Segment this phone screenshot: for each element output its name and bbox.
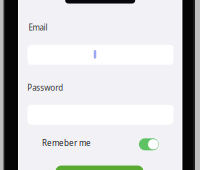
staticText: Remeber me xyxy=(42,138,91,148)
button[interactable]: Remember me xyxy=(139,138,159,150)
button[interactable]: Email field xyxy=(27,45,173,65)
staticText: Email xyxy=(28,22,47,33)
staticText: Password xyxy=(27,82,63,93)
button[interactable]: Sign in xyxy=(55,165,143,170)
